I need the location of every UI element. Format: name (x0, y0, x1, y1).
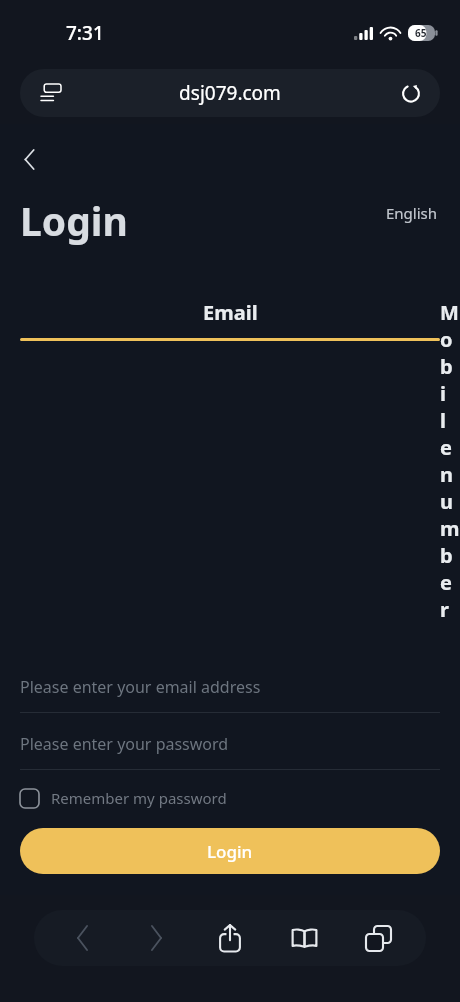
staticText: Email (203, 299, 258, 326)
staticText: 65 (415, 26, 427, 40)
button[interactable]: Login (20, 828, 440, 874)
button[interactable]: Back (12, 142, 46, 176)
button[interactable]: Email (20, 299, 440, 341)
staticText: dsj079.com (179, 80, 281, 106)
button[interactable]: Bookmarks (278, 912, 330, 964)
button[interactable]: English (384, 199, 440, 227)
button[interactable]: Please enter your password (20, 727, 440, 761)
staticText: Remember my password (51, 788, 227, 808)
button[interactable]: Please enter your email address (20, 670, 440, 704)
button[interactable]: Forward (130, 912, 182, 964)
staticText: Login (20, 194, 128, 247)
staticText: 7:31 (66, 20, 104, 46)
button[interactable]: Share (204, 912, 256, 964)
staticText: Login (207, 840, 253, 863)
button[interactable]: Back (56, 912, 108, 964)
staticText: Please enter your email address (20, 676, 261, 698)
button[interactable]: Page settings (20, 69, 440, 117)
button[interactable]: Remember my password (20, 788, 227, 808)
staticText: English (386, 203, 438, 223)
button[interactable]: Page settings (34, 76, 68, 110)
staticText: Please enter your password (20, 733, 229, 755)
button[interactable]: Tabs (352, 912, 404, 964)
button[interactable]: Reload (396, 78, 426, 108)
